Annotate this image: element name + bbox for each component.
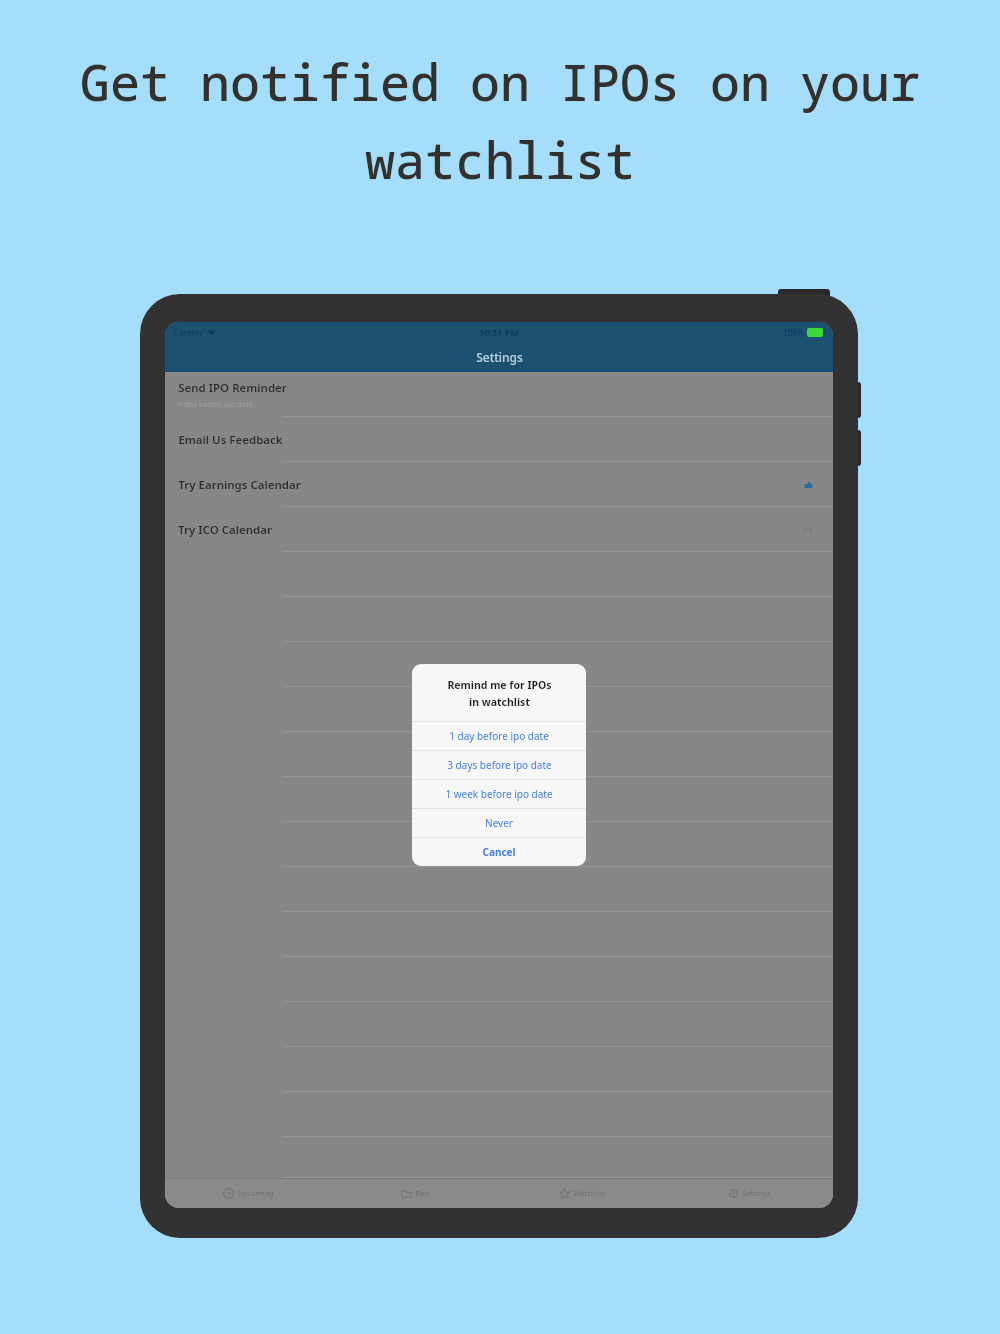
button[interactable]: Email Us Feedback — [165, 417, 833, 462]
staticText: Cancel — [482, 845, 516, 859]
button[interactable]: Send IPO Reminder — [165, 372, 833, 417]
staticText: Email Us Feedback — [178, 432, 283, 448]
staticText: Never — [485, 816, 513, 830]
staticText: Try Earnings Calendar — [178, 477, 301, 493]
button[interactable]: 1 day before ipo date — [412, 722, 586, 750]
staticText: Carrier — [173, 326, 203, 338]
staticText: Try ICO Calendar — [178, 522, 272, 538]
staticText: watchlist — [365, 126, 635, 194]
button[interactable]: 1 week before ipo date — [412, 780, 586, 808]
staticText: Settings — [742, 1188, 771, 1198]
staticText: 1 day before ipo date — [178, 399, 253, 409]
staticText: ico — [803, 525, 813, 535]
button[interactable]: Settings — [666, 1178, 833, 1208]
staticText: Remind me for IPOs — [447, 678, 552, 692]
staticText: in watchlist — [469, 695, 530, 709]
staticText: Get notified on IPOs on your — [80, 48, 920, 116]
button[interactable]: Never — [412, 809, 586, 837]
staticText: Upcoming — [237, 1188, 274, 1198]
staticText: Send IPO Reminder — [178, 380, 287, 396]
button[interactable]: Watchlist — [499, 1178, 666, 1208]
staticText: Past — [415, 1188, 431, 1198]
button[interactable]: Past — [332, 1178, 499, 1208]
staticText: 3 days before ipo date — [447, 758, 552, 772]
staticText: 1 day before ipo date — [449, 729, 549, 743]
button[interactable]: Try ICO Calendar — [165, 507, 833, 552]
button[interactable]: Upcoming — [165, 1178, 332, 1208]
staticText: 100% — [783, 327, 804, 338]
staticText: Settings — [476, 349, 523, 365]
staticText: 1 week before ipo date — [445, 787, 553, 801]
staticText: Watchlist — [573, 1188, 606, 1198]
button[interactable]: Cancel — [412, 838, 586, 866]
button[interactable]: Try Earnings Calendar — [165, 462, 833, 507]
button[interactable]: 3 days before ipo date — [412, 751, 586, 779]
staticText: 10:31 PM — [479, 326, 519, 338]
